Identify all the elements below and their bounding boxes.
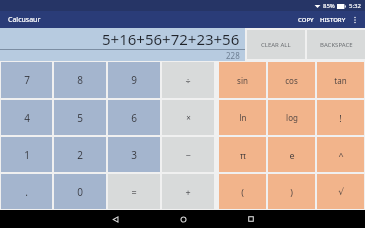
button[interactable]: tan (317, 62, 364, 98)
button[interactable]: log (268, 100, 315, 135)
staticText: sin (237, 75, 248, 86)
button[interactable]: π (219, 137, 266, 172)
button[interactable]: BACKSPACE (307, 30, 365, 59)
button[interactable]: × (162, 100, 214, 135)
staticText: 2 (77, 148, 83, 162)
staticText: 5:32 (349, 2, 361, 10)
button[interactable]: 4 (1, 100, 52, 135)
button[interactable]: − (162, 137, 214, 172)
button[interactable]: 9 (108, 62, 160, 98)
staticText: 7 (24, 73, 30, 87)
staticText: 4 (24, 111, 30, 125)
staticText: + (185, 186, 191, 198)
staticText: × (186, 112, 191, 123)
staticText: 3 (131, 148, 137, 162)
button[interactable]: HISTORY (317, 14, 349, 26)
button[interactable]: 8 (54, 62, 106, 98)
button[interactable]: CLEAR ALL (247, 30, 305, 59)
button[interactable]: = (108, 174, 160, 209)
button[interactable]: sin (219, 62, 266, 98)
button[interactable]: Home (166, 210, 200, 228)
button[interactable]: √ (317, 174, 364, 209)
staticText: ^ (338, 149, 344, 161)
button[interactable]: ! (317, 100, 364, 135)
button[interactable]: ÷ (162, 62, 214, 98)
staticText: Calcusaur (8, 15, 41, 25)
staticText: HISTORY (320, 16, 346, 24)
staticText: 228 (226, 50, 240, 61)
button[interactable]: 0 (54, 174, 106, 209)
staticText: ! (339, 112, 342, 124)
staticText: e (289, 149, 295, 161)
button[interactable]: ^ (317, 137, 364, 172)
staticText: ÷ (185, 74, 191, 86)
button[interactable]: e (268, 137, 315, 172)
button[interactable]: 5 (54, 100, 106, 135)
staticText: 0 (77, 185, 83, 199)
staticText: BACKSPACE (320, 41, 353, 49)
button[interactable]: 1 (1, 137, 52, 172)
button[interactable]: 7 (1, 62, 52, 98)
button[interactable]: Recent apps (234, 210, 268, 228)
staticText: − (185, 149, 191, 161)
staticText: ( (241, 186, 244, 198)
staticText: ) (290, 186, 293, 198)
staticText: tan (334, 75, 347, 86)
button[interactable]: ln (219, 100, 266, 135)
staticText: 5 (77, 111, 83, 125)
staticText: log (286, 112, 298, 123)
button[interactable]: COPY (295, 14, 317, 26)
staticText: √ (338, 187, 344, 197)
button[interactable]: ) (268, 174, 315, 209)
staticText: ln (239, 112, 247, 123)
staticText: 6 (131, 111, 137, 125)
staticText: 5+16+56+72+23+56 (102, 29, 240, 49)
staticText: COPY (298, 16, 314, 24)
button[interactable]: + (162, 174, 214, 209)
staticText: 85% (323, 2, 335, 10)
button[interactable]: ( (219, 174, 266, 209)
staticText: 9 (131, 73, 137, 87)
button[interactable]: 3 (108, 137, 160, 172)
staticText: 1 (24, 148, 30, 162)
staticText: π (240, 149, 246, 161)
button[interactable]: 6 (108, 100, 160, 135)
button[interactable]: Back (98, 210, 132, 228)
staticText: . (25, 185, 28, 199)
button[interactable]: cos (268, 62, 315, 98)
staticText: CLEAR ALL (261, 41, 291, 49)
staticText: cos (285, 75, 298, 86)
staticText: 8 (77, 73, 83, 87)
button[interactable]: More options (349, 14, 361, 26)
staticText: = (131, 186, 137, 198)
button[interactable]: 2 (54, 137, 106, 172)
